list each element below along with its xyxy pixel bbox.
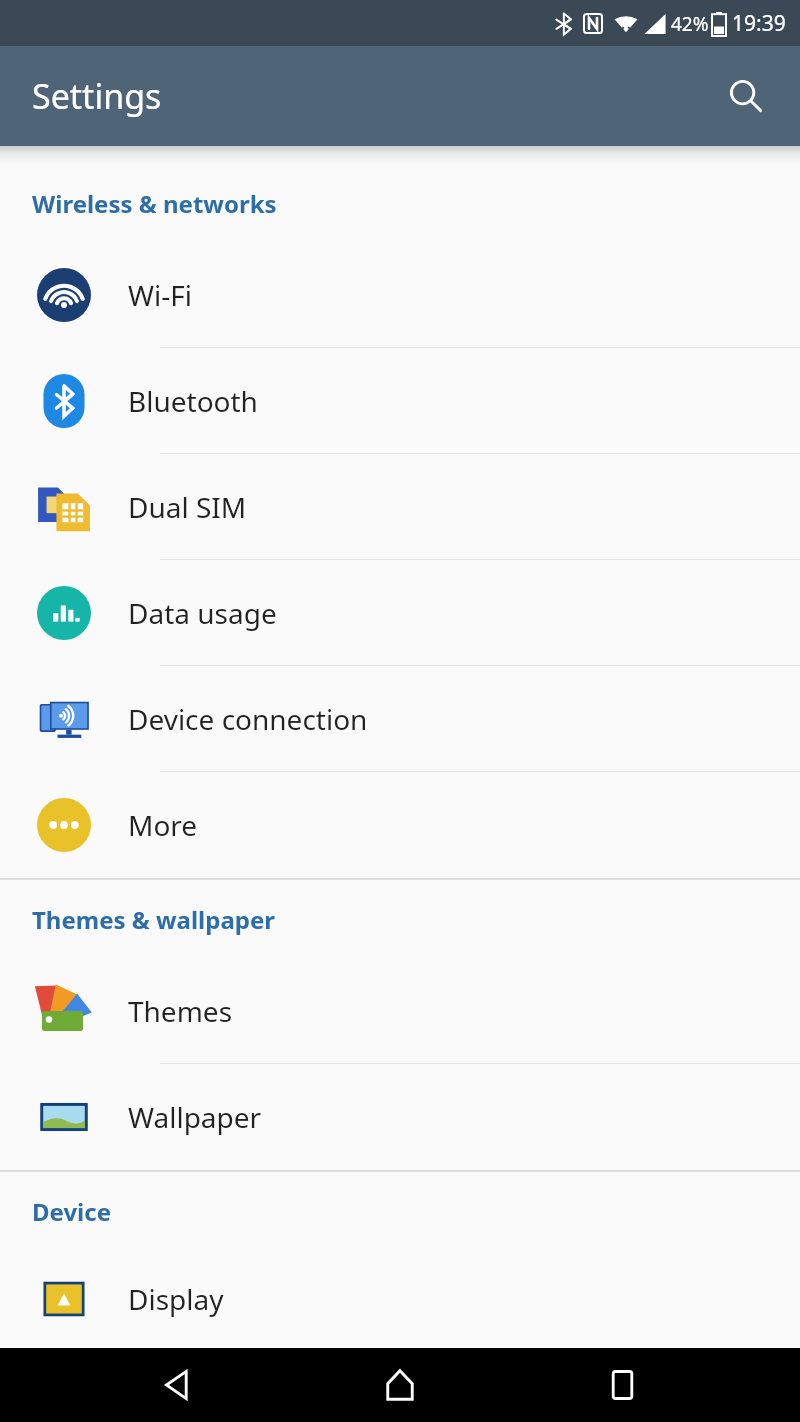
button[interactable]: Recent apps: [576, 1348, 672, 1422]
button[interactable]: Data usage: [0, 560, 800, 666]
button[interactable]: Home: [352, 1348, 448, 1422]
staticText: Display: [128, 1280, 224, 1318]
staticText: Wireless & networks: [32, 187, 277, 220]
staticText: 42%: [671, 11, 709, 37]
button[interactable]: Themes: [0, 958, 800, 1064]
button[interactable]: Bluetooth: [0, 348, 800, 454]
staticText: Wi-Fi: [128, 276, 193, 314]
staticText: Bluetooth: [128, 382, 258, 420]
staticText: Themes: [128, 992, 233, 1030]
staticText: Settings: [32, 73, 162, 119]
button[interactable]: More: [0, 772, 800, 878]
staticText: 19:39: [732, 9, 786, 38]
button[interactable]: Back: [128, 1348, 224, 1422]
staticText: Device connection: [128, 700, 368, 738]
button[interactable]: Wi-Fi: [0, 242, 800, 348]
button[interactable]: Dual SIM: [0, 454, 800, 560]
staticText: Wallpaper: [128, 1098, 262, 1136]
button[interactable]: Search: [714, 64, 778, 128]
staticText: More: [128, 806, 198, 844]
button[interactable]: Device connection: [0, 666, 800, 772]
button[interactable]: Display: [0, 1250, 800, 1348]
staticText: Data usage: [128, 594, 277, 632]
staticText: Themes & wallpaper: [32, 903, 276, 936]
staticText: Dual SIM: [128, 488, 247, 526]
button[interactable]: Wallpaper: [0, 1064, 800, 1170]
staticText: Device: [32, 1195, 112, 1228]
